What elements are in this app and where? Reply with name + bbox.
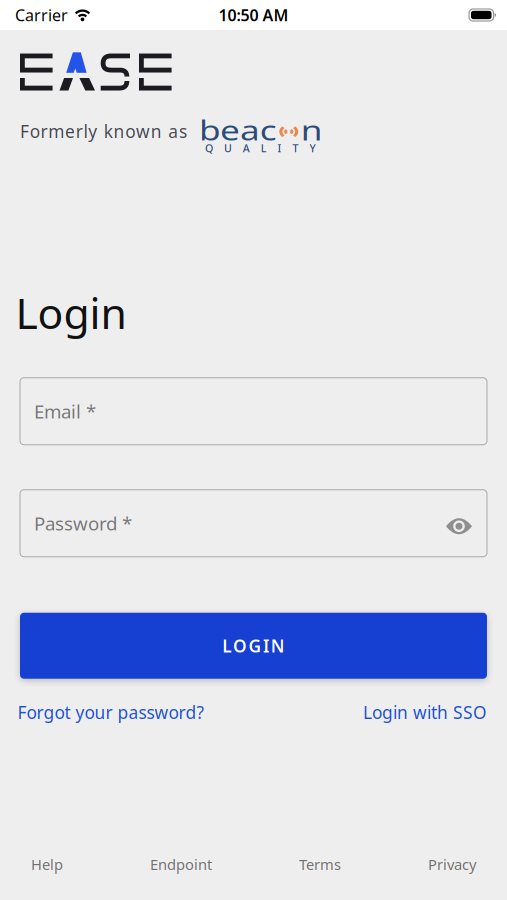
button[interactable]: Endpoint: [150, 854, 212, 874]
button[interactable]: Email *: [20, 378, 487, 445]
staticText: T: [292, 141, 298, 155]
staticText: I: [263, 634, 269, 657]
staticText: O: [233, 634, 247, 657]
staticText: I: [278, 141, 282, 155]
staticText: Terms: [299, 854, 341, 874]
staticText: n: [276, 112, 292, 148]
staticText: L: [222, 634, 231, 657]
staticText: Q: [205, 141, 213, 155]
staticText: Y: [309, 141, 315, 155]
button[interactable]: L: [20, 613, 487, 679]
staticText: A: [243, 141, 250, 155]
staticText: L: [261, 141, 267, 155]
staticText: beac: [199, 112, 258, 148]
staticText: N: [271, 634, 285, 657]
button[interactable]: Forgot your password?: [20, 701, 207, 724]
staticText: Forgot your password?: [17, 701, 204, 724]
staticText: G: [248, 634, 261, 657]
button[interactable]: Login with SSO: [363, 701, 487, 724]
button[interactable]: Show password: [446, 514, 472, 532]
staticText: Help: [31, 854, 63, 874]
button[interactable]: Help: [31, 854, 63, 874]
staticText: 10:50 AM: [218, 4, 288, 26]
staticText: Login: [15, 284, 126, 341]
button[interactable]: Privacy: [428, 854, 476, 874]
staticText: Password *: [34, 511, 132, 536]
button[interactable]: Terms: [299, 854, 341, 874]
staticText: Email *: [34, 399, 96, 424]
staticText: Formerly known as: [20, 120, 187, 143]
staticText: U: [224, 141, 232, 155]
staticText: Privacy: [428, 854, 476, 874]
staticText: Endpoint: [150, 854, 212, 874]
staticText: Login with SSO: [363, 701, 487, 724]
button[interactable]: Password *: [20, 490, 487, 557]
staticText: Carrier: [15, 4, 68, 26]
